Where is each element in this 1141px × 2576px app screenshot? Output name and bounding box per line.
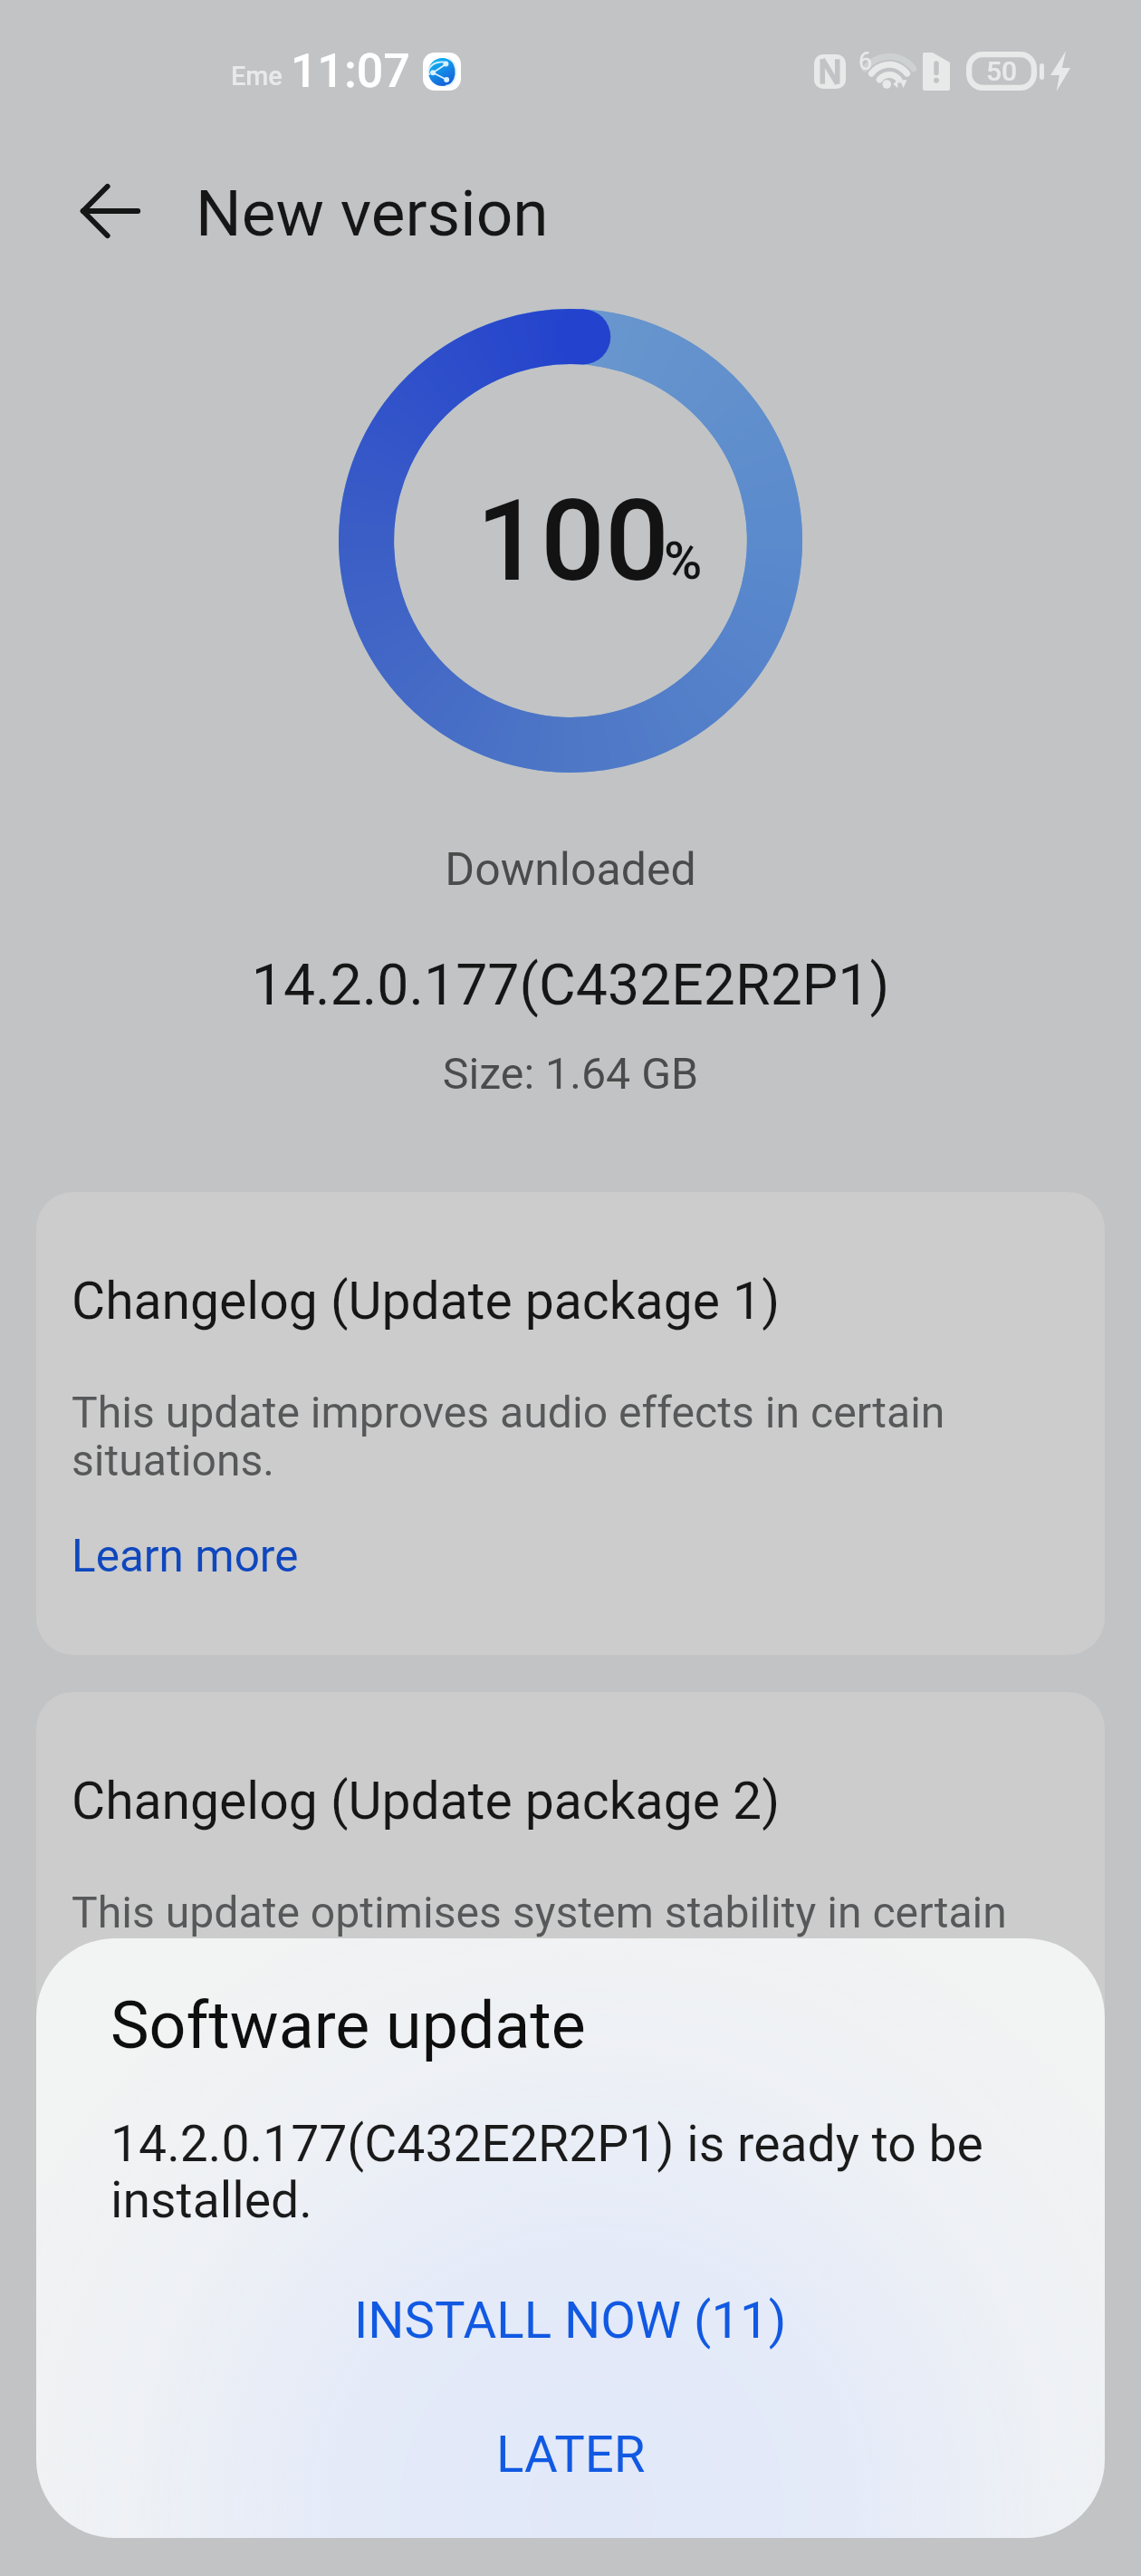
staticText: 11:07 <box>291 43 410 99</box>
staticText: LATER <box>496 2425 646 2485</box>
staticText: This update improves audio effects in ce… <box>72 1387 1053 1486</box>
staticText: 14.2.0.177(C432E2R2P1) <box>0 952 1141 1018</box>
staticText: % <box>664 531 703 592</box>
staticText: This update optimises system stability i… <box>72 1887 1053 1986</box>
button[interactable]: Changelog (Update package 2) <box>36 1692 1105 2155</box>
staticText: Software update <box>110 1987 586 2063</box>
staticText: Changelog (Update package 2) <box>72 1771 780 1831</box>
staticText: 6 <box>858 47 873 76</box>
button[interactable]: Changelog (Update package 1) <box>36 1192 1105 1655</box>
staticText: 14.2.0.177(C432E2R2P1) is ready to be in… <box>110 2115 1031 2230</box>
staticText: Learn more <box>72 2030 299 2082</box>
staticText: 50 <box>986 55 1018 87</box>
staticText: New version <box>196 176 549 251</box>
staticText: Learn more <box>72 1530 299 1582</box>
staticText: Eme <box>231 61 283 91</box>
staticText: INSTALL NOW (11) <box>354 2291 787 2350</box>
button[interactable]: Back <box>70 173 140 249</box>
staticText: Size: 1.64 GB <box>0 1048 1141 1100</box>
staticText: Changelog (Update package 1) <box>72 1271 780 1331</box>
button[interactable]: INSTALL NOW (11) <box>110 2269 1031 2372</box>
staticText: Downloaded <box>0 843 1141 897</box>
button[interactable]: LATER <box>110 2403 1031 2506</box>
staticText: 100 <box>476 475 670 607</box>
